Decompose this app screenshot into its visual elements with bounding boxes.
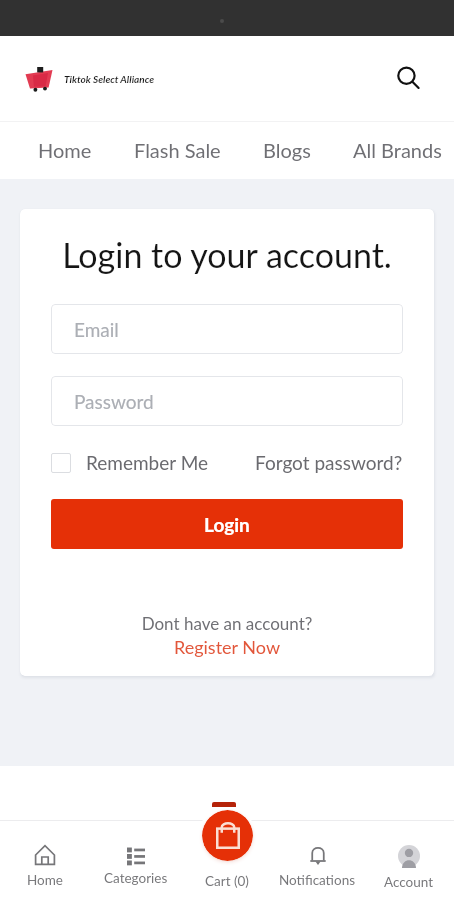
staticText: Categories [104,870,168,886]
button[interactable]: Cart (0) [181,820,272,889]
staticText: Password [74,390,154,413]
button[interactable]: Login [51,499,403,549]
button[interactable]: Account [363,820,454,890]
staticText: Dont have an account? [51,613,403,633]
button[interactable]: Register Now [51,636,403,658]
button[interactable]: All Brands [345,129,450,173]
button[interactable]: Blogs [255,129,319,173]
staticText: Email [74,318,119,341]
button[interactable]: Forgot password? [255,451,403,474]
button[interactable]: Search [382,52,436,106]
staticText: Tiktok Select Alliance [64,73,155,85]
staticText: Login [204,513,250,536]
staticText: All Brands [353,138,442,162]
staticText: Flash Sale [134,138,221,162]
staticText: Home [38,138,92,162]
staticText: Register Now [51,636,403,658]
button[interactable]: Cart [202,810,253,861]
staticText: Login to your account. [51,234,403,275]
button[interactable]: Categories [90,820,181,886]
staticText: Cart (0) [205,873,249,889]
button[interactable]: Flash Sale [126,129,229,173]
button[interactable]: Notifications [272,820,363,888]
staticText: Blogs [263,138,311,162]
staticText: Home [27,872,63,888]
button[interactable]: Email [51,304,403,354]
button[interactable]: Remember Me [51,451,209,474]
staticText: Remember Me [86,451,209,474]
button[interactable]: Home [0,820,90,888]
staticText: Account [384,874,434,890]
staticText: Notifications [279,872,356,888]
button[interactable]: Home [30,129,100,173]
button[interactable]: Password [51,376,403,426]
staticText: Forgot password? [255,451,403,474]
